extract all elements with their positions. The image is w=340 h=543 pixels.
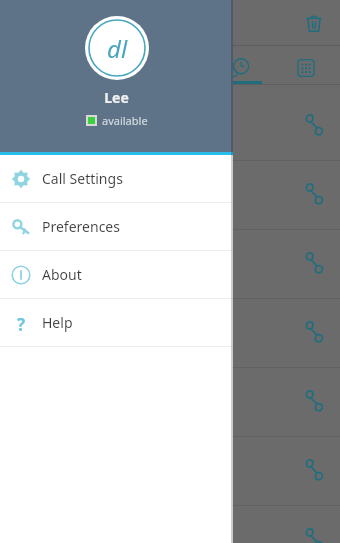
staticText: available (102, 113, 148, 128)
staticText: Preferences (42, 217, 120, 236)
button[interactable] (0, 161, 340, 230)
button[interactable] (0, 437, 340, 506)
button[interactable] (0, 368, 340, 437)
staticText: dl (107, 32, 128, 65)
button[interactable] (0, 92, 340, 161)
button[interactable] (0, 299, 340, 368)
button[interactable] (0, 230, 340, 299)
staticText: ? (17, 313, 26, 333)
staticText: Lee (104, 88, 129, 107)
button[interactable]: Delete (300, 10, 328, 38)
button[interactable]: Call Settings (0, 155, 233, 202)
button[interactable] (0, 506, 340, 543)
button[interactable]: Recents (224, 52, 256, 84)
staticText: Help (42, 313, 73, 332)
staticText: About (42, 265, 82, 284)
button[interactable]: Dialpad (290, 52, 322, 84)
button[interactable]: Preferences (0, 203, 233, 250)
button[interactable]: About (0, 251, 233, 298)
staticText: Call Settings (42, 169, 123, 188)
button[interactable]: ? (0, 299, 233, 346)
